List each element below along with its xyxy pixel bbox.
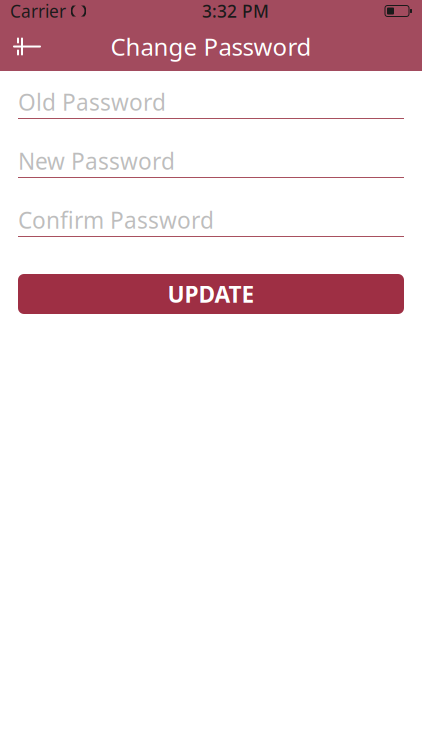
button[interactable]: Confirm Password xyxy=(18,204,404,237)
staticText: 3:32 PM xyxy=(202,0,269,22)
staticText: New Password xyxy=(18,146,175,176)
staticText: Carrier xyxy=(10,0,66,22)
staticText: Change Password xyxy=(110,31,311,62)
button[interactable]: New Password xyxy=(18,145,404,178)
staticText: Confirm Password xyxy=(18,205,214,235)
button[interactable]: UPDATE xyxy=(18,274,404,314)
staticText: Old Password xyxy=(18,87,166,117)
staticText: UPDATE xyxy=(167,279,254,309)
button[interactable]: Old Password xyxy=(18,86,404,119)
button[interactable]: Back xyxy=(0,22,54,71)
